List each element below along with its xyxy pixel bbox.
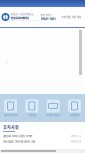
staticText: CHUNGNAM COUNCIL ON SOCIAL WELFARE <box>10 20 38 21</box>
staticText: 공지사항 <box>3 124 19 130</box>
staticText: 충남사회복지협의회 <box>10 16 28 20</box>
staticText: 회원증 발급 <box>69 113 79 117</box>
staticText: 2018.05.17 <box>71 134 81 137</box>
button[interactable]: 소개 <box>61 15 65 19</box>
button[interactable]: 정보 <box>77 15 81 19</box>
staticText: 2018 충남도 복지시설 종사자 교육 <box>3 139 35 143</box>
button[interactable]: 복지카드 만들기 <box>42 94 64 122</box>
button[interactable]: 2018 충남도 복지시설 종사자 교육 <box>3 139 81 143</box>
button[interactable]: 충남사회 복지사 회장단 워크숍 <box>3 134 81 138</box>
staticText: 알림 <box>67 15 71 19</box>
staticText: 충남사회 복지사 회장단 워크숍 <box>3 134 32 138</box>
staticText: 사업 <box>72 15 76 19</box>
staticText: 충청남도 사회복지협의회 <box>10 13 33 16</box>
staticText: 회원가입 신청서 <box>4 113 18 117</box>
button[interactable]: 후원신청 <box>21 94 42 122</box>
button[interactable]: 회원증 발급 <box>64 94 85 122</box>
staticText: 함께 행복한 <box>40 13 51 17</box>
staticText: 충청남도 만들기 <box>40 17 55 21</box>
button[interactable]: 충남사회복지협의회 홈 <box>1 12 10 21</box>
button[interactable]: 회원가입 신청서 <box>0 94 21 122</box>
staticText: 2018.05.28 <box>71 140 81 143</box>
button[interactable]: Previous slide <box>3 56 10 66</box>
staticText: 복지카드 만들기 <box>46 113 60 117</box>
button[interactable]: 사업 <box>72 15 76 19</box>
button[interactable]: 알림 <box>67 15 71 19</box>
staticText: 정보 <box>77 15 81 19</box>
staticText: 후원신청 <box>28 113 36 117</box>
staticText: 소개 <box>61 15 65 19</box>
staticText: ‹ <box>5 55 7 67</box>
